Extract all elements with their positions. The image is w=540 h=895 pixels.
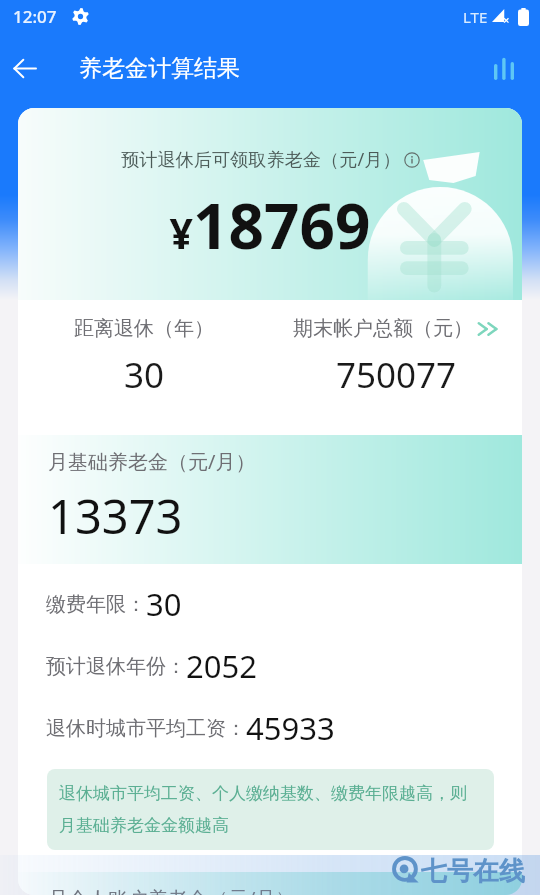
staticText: 12:07 — [13, 5, 57, 28]
staticText: 13373 — [48, 484, 183, 548]
staticText: 30 — [124, 351, 165, 399]
staticText: LTE — [463, 7, 488, 27]
staticText: 养老金计算结果 — [79, 54, 240, 83]
staticText: ¥18769 — [18, 183, 522, 267]
staticText: 退休时城市平均工资： — [46, 716, 246, 741]
staticText: 预计退休后可领取养老金（元/月） — [121, 147, 401, 172]
staticText: 45933 — [246, 707, 335, 749]
staticText: 期末帐户总额（元） — [293, 316, 473, 341]
staticText: 退休城市平均工资、个人缴纳基数、缴费年限越高，则 月基础养老金金额越高 — [59, 783, 467, 836]
button[interactable]: Chart — [480, 44, 528, 92]
staticText: 30 — [146, 583, 182, 625]
staticText: 距离退休（年） — [74, 316, 214, 341]
staticText: 预计退休年份： — [46, 654, 186, 679]
staticText: 月基础养老金（元/月） — [48, 448, 256, 475]
staticText: 缴费年限： — [46, 592, 146, 617]
staticText: 2052 — [186, 645, 257, 687]
staticText: 月个人账户养老金（元/月） — [48, 885, 296, 895]
button[interactable]: Back — [0, 44, 48, 92]
staticText: 750077 — [336, 351, 457, 399]
staticText: 七号在线 — [421, 855, 525, 884]
